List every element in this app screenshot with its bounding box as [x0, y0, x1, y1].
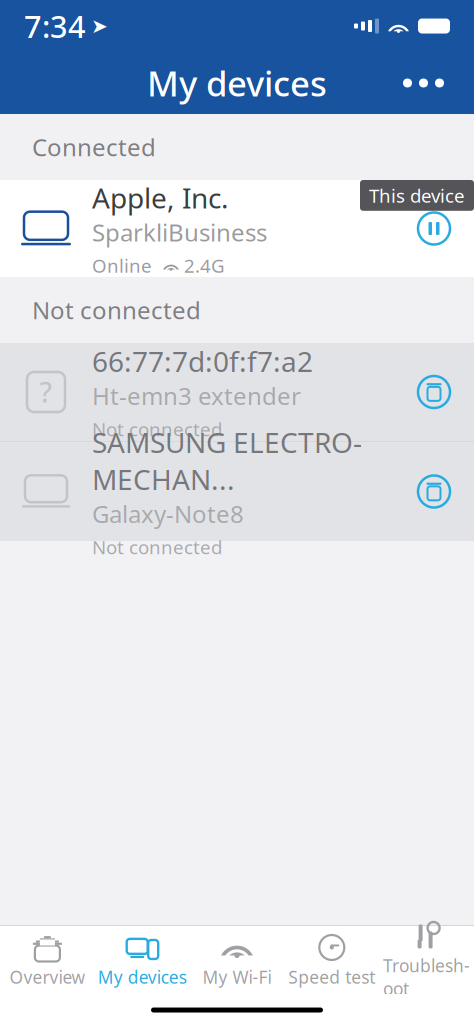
staticText: Not connected [92, 535, 222, 559]
staticText: Apple, Inc. [92, 179, 229, 216]
staticText: 2.4G [184, 253, 225, 278]
staticText: SparkliBusiness [92, 216, 267, 248]
staticText: My devices [98, 965, 187, 988]
staticText: Galaxy-Note8 [92, 498, 244, 530]
staticText: ➤ [91, 15, 108, 37]
button[interactable]: More options [387, 62, 460, 103]
staticText: Troubleshoot [383, 954, 470, 1000]
button[interactable]: My Wi-Fi [190, 926, 284, 993]
staticText: My Wi-Fi [202, 965, 271, 988]
staticText: ? [39, 373, 52, 411]
staticText: Not connected [92, 417, 222, 441]
button[interactable]: ? [0, 343, 474, 442]
staticText: This device [369, 183, 465, 208]
button[interactable]: SAMSUNG ELECTRO-MECHAN... [0, 442, 474, 541]
button[interactable]: Troubleshoot [379, 915, 474, 1005]
staticText: SAMSUNG ELECTRO-MECHAN... [92, 423, 362, 498]
staticText: Connected [32, 131, 156, 163]
button[interactable]: Speed test [284, 926, 379, 993]
staticText: My devices [147, 60, 327, 106]
button[interactable]: Overview [0, 926, 95, 993]
staticText: 66:77:7d:0f:f7:a2 [92, 343, 313, 380]
staticText: Speed test [288, 965, 375, 988]
staticText: Not connected [32, 294, 201, 326]
button[interactable]: Apple, Inc. [0, 180, 474, 277]
staticText: Overview [9, 965, 85, 988]
staticText: Ht-emn3 extender [92, 380, 301, 412]
staticText: Online [92, 253, 152, 278]
button[interactable]: My devices [95, 926, 190, 993]
staticText: 7:34 [24, 6, 86, 46]
